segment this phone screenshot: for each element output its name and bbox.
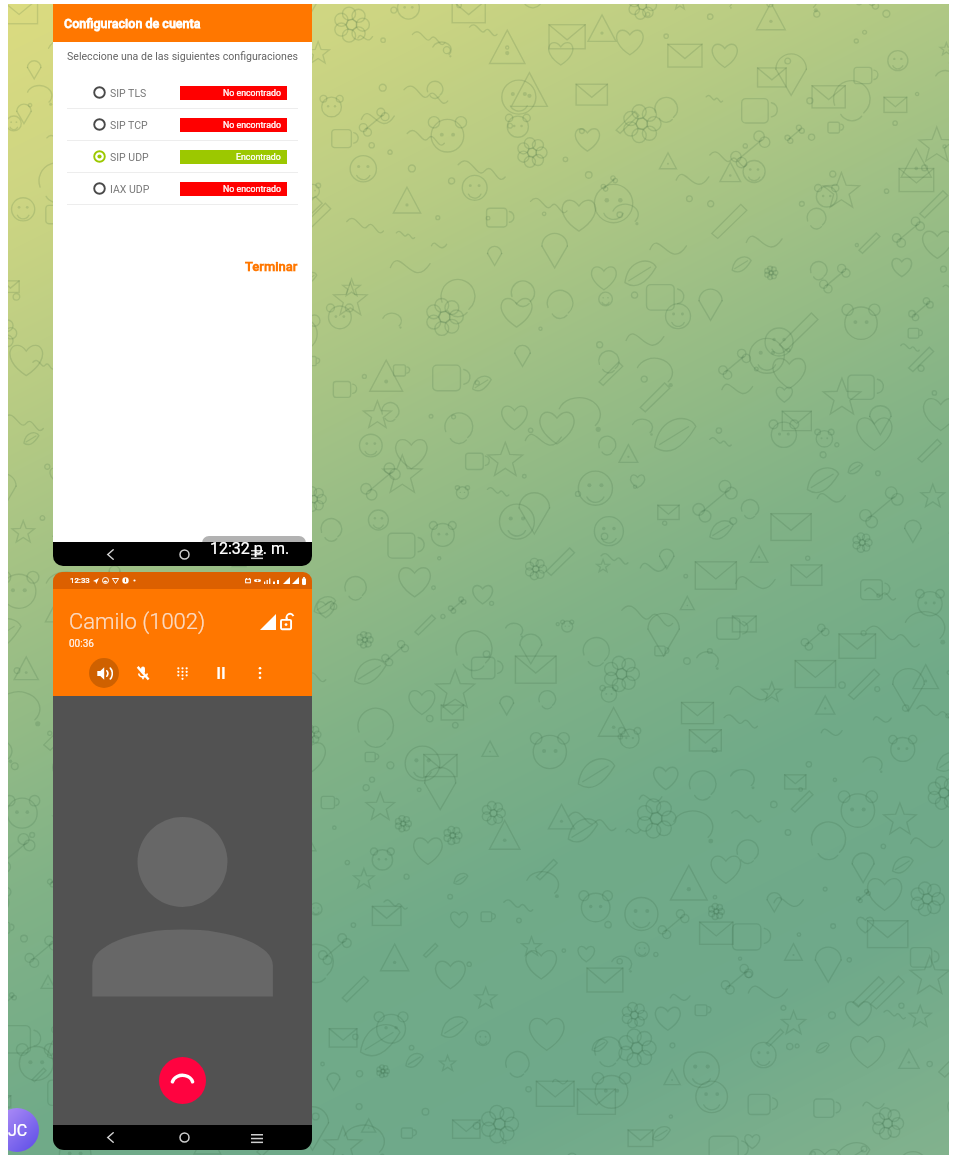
staticText: IAX UDP	[110, 183, 150, 195]
button[interactable]: Home	[170, 542, 198, 566]
staticText: SIP TLS	[110, 87, 147, 99]
button[interactable]: Home	[170, 1125, 198, 1150]
staticText: No encontrado	[223, 184, 281, 194]
button[interactable]: SIP TCP	[53, 109, 312, 140]
staticText: SIP TCP	[110, 119, 148, 131]
button[interactable]: End call	[159, 1057, 206, 1104]
button[interactable]: Back	[96, 1125, 124, 1150]
staticText: Camilo (1002)	[69, 609, 206, 635]
staticText: SIP UDP	[110, 151, 149, 163]
button[interactable]: Terminar	[53, 259, 312, 274]
staticText: Configuracion de cuenta	[64, 16, 201, 31]
staticText: JC	[8, 1121, 28, 1140]
button[interactable]: Dialpad	[168, 659, 196, 687]
staticText: Encontrado	[236, 152, 281, 162]
button[interactable]: SIP UDP	[53, 141, 312, 172]
button[interactable]: Profile JC	[8, 1108, 39, 1152]
button[interactable]: SIP TLS	[53, 77, 312, 108]
button[interactable]: Recents	[243, 542, 271, 566]
button[interactable]: IAX UDP	[53, 173, 312, 204]
staticText: 00:36	[69, 638, 94, 650]
staticText: No encontrado	[223, 120, 281, 130]
button[interactable]: Speaker	[89, 658, 119, 688]
button[interactable]: Recents	[243, 1125, 271, 1150]
staticText: 12:32 p. m.	[210, 539, 290, 558]
button[interactable]: More options	[246, 659, 274, 687]
staticText: No encontrado	[223, 88, 281, 98]
staticText: Terminar	[245, 259, 298, 274]
button[interactable]: Back	[96, 542, 124, 566]
staticText: Seleccione una de las siguientes configu…	[67, 50, 299, 62]
button[interactable]: Mute	[129, 659, 157, 687]
staticText: 12:33	[70, 576, 90, 585]
button[interactable]: Hold	[207, 659, 235, 687]
